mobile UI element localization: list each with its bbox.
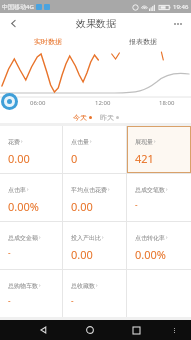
staticText: 花费 xyxy=(8,138,20,146)
button[interactable]: 总收藏数 xyxy=(63,270,127,317)
staticText: 总购物车数 xyxy=(8,282,38,290)
staticText: - xyxy=(8,295,11,306)
button[interactable]: 总购物车数 xyxy=(0,270,63,317)
staticText: › xyxy=(21,138,23,145)
button[interactable]: 投入产出比 xyxy=(63,222,127,269)
button[interactable]: 平均点击花费 xyxy=(63,174,127,221)
button[interactable]: Recent apps xyxy=(127,321,145,339)
staticText: 点击转化率 xyxy=(135,234,165,242)
staticText: 0.00 xyxy=(71,199,93,214)
staticText: 0 xyxy=(71,151,78,166)
staticText: › xyxy=(166,234,168,241)
staticText: 点击率 xyxy=(8,186,26,194)
button[interactable]: 报表数据 xyxy=(95,34,191,49)
staticText: › xyxy=(27,186,29,193)
staticText: › xyxy=(90,138,92,145)
staticText: 效果数据 xyxy=(76,17,116,30)
staticText: - xyxy=(8,247,11,258)
staticText: 0.00 xyxy=(8,151,30,166)
staticText: › xyxy=(154,138,156,145)
button[interactable]: 昨天 xyxy=(100,113,119,122)
button[interactable]: Chart info xyxy=(1,93,18,110)
button[interactable]: 总成交金额 xyxy=(0,222,63,269)
staticText: 展现量 xyxy=(135,138,153,146)
staticText: 中国移动4G xyxy=(2,3,34,11)
staticText: 点击量 xyxy=(71,138,89,146)
button[interactable]: More options xyxy=(165,13,191,34)
staticText: › xyxy=(39,282,41,289)
staticText: - xyxy=(71,295,74,306)
staticText: 06:00 xyxy=(30,99,46,107)
staticText: 昨天 xyxy=(100,113,114,122)
button[interactable]: 今天 xyxy=(73,113,92,122)
staticText: - xyxy=(135,199,138,210)
staticText: 19:46 xyxy=(173,3,189,11)
staticText: 0.00% xyxy=(8,199,39,214)
staticText: 总收藏数 xyxy=(71,282,95,290)
staticText: 报表数据 xyxy=(129,37,157,46)
button[interactable]: Back xyxy=(35,321,53,339)
staticText: 0.00 xyxy=(71,247,93,262)
button[interactable]: 点击量 xyxy=(63,126,127,173)
staticText: 今天 xyxy=(73,113,87,122)
staticText: › xyxy=(166,186,168,193)
button[interactable]: 花费 xyxy=(0,126,63,173)
button[interactable]: 总成交笔数 xyxy=(127,174,191,221)
staticText: 18:00 xyxy=(159,99,175,107)
button[interactable]: 点击转化率 xyxy=(127,222,191,269)
staticText: 投入产出比 xyxy=(71,234,101,242)
staticText: › xyxy=(96,282,98,289)
staticText: 总成交金额 xyxy=(8,234,38,242)
staticText: › xyxy=(39,234,41,241)
button[interactable]: Back xyxy=(0,13,26,34)
staticText: 总成交笔数 xyxy=(135,186,165,194)
button[interactable]: 展现量 xyxy=(127,126,191,173)
button[interactable]: Home xyxy=(81,321,99,339)
staticText: 0.00% xyxy=(135,247,166,262)
button[interactable]: 点击率 xyxy=(0,174,63,221)
staticText: 12:00 xyxy=(95,99,111,107)
staticText: 实时数据 xyxy=(34,37,62,46)
staticText: 平均点击花费 xyxy=(71,186,107,194)
staticText: › xyxy=(108,186,110,193)
button[interactable]: Menu xyxy=(167,323,181,337)
button[interactable]: 实时数据 xyxy=(0,34,95,49)
staticText: 421 xyxy=(135,151,154,166)
staticText: › xyxy=(102,234,104,241)
